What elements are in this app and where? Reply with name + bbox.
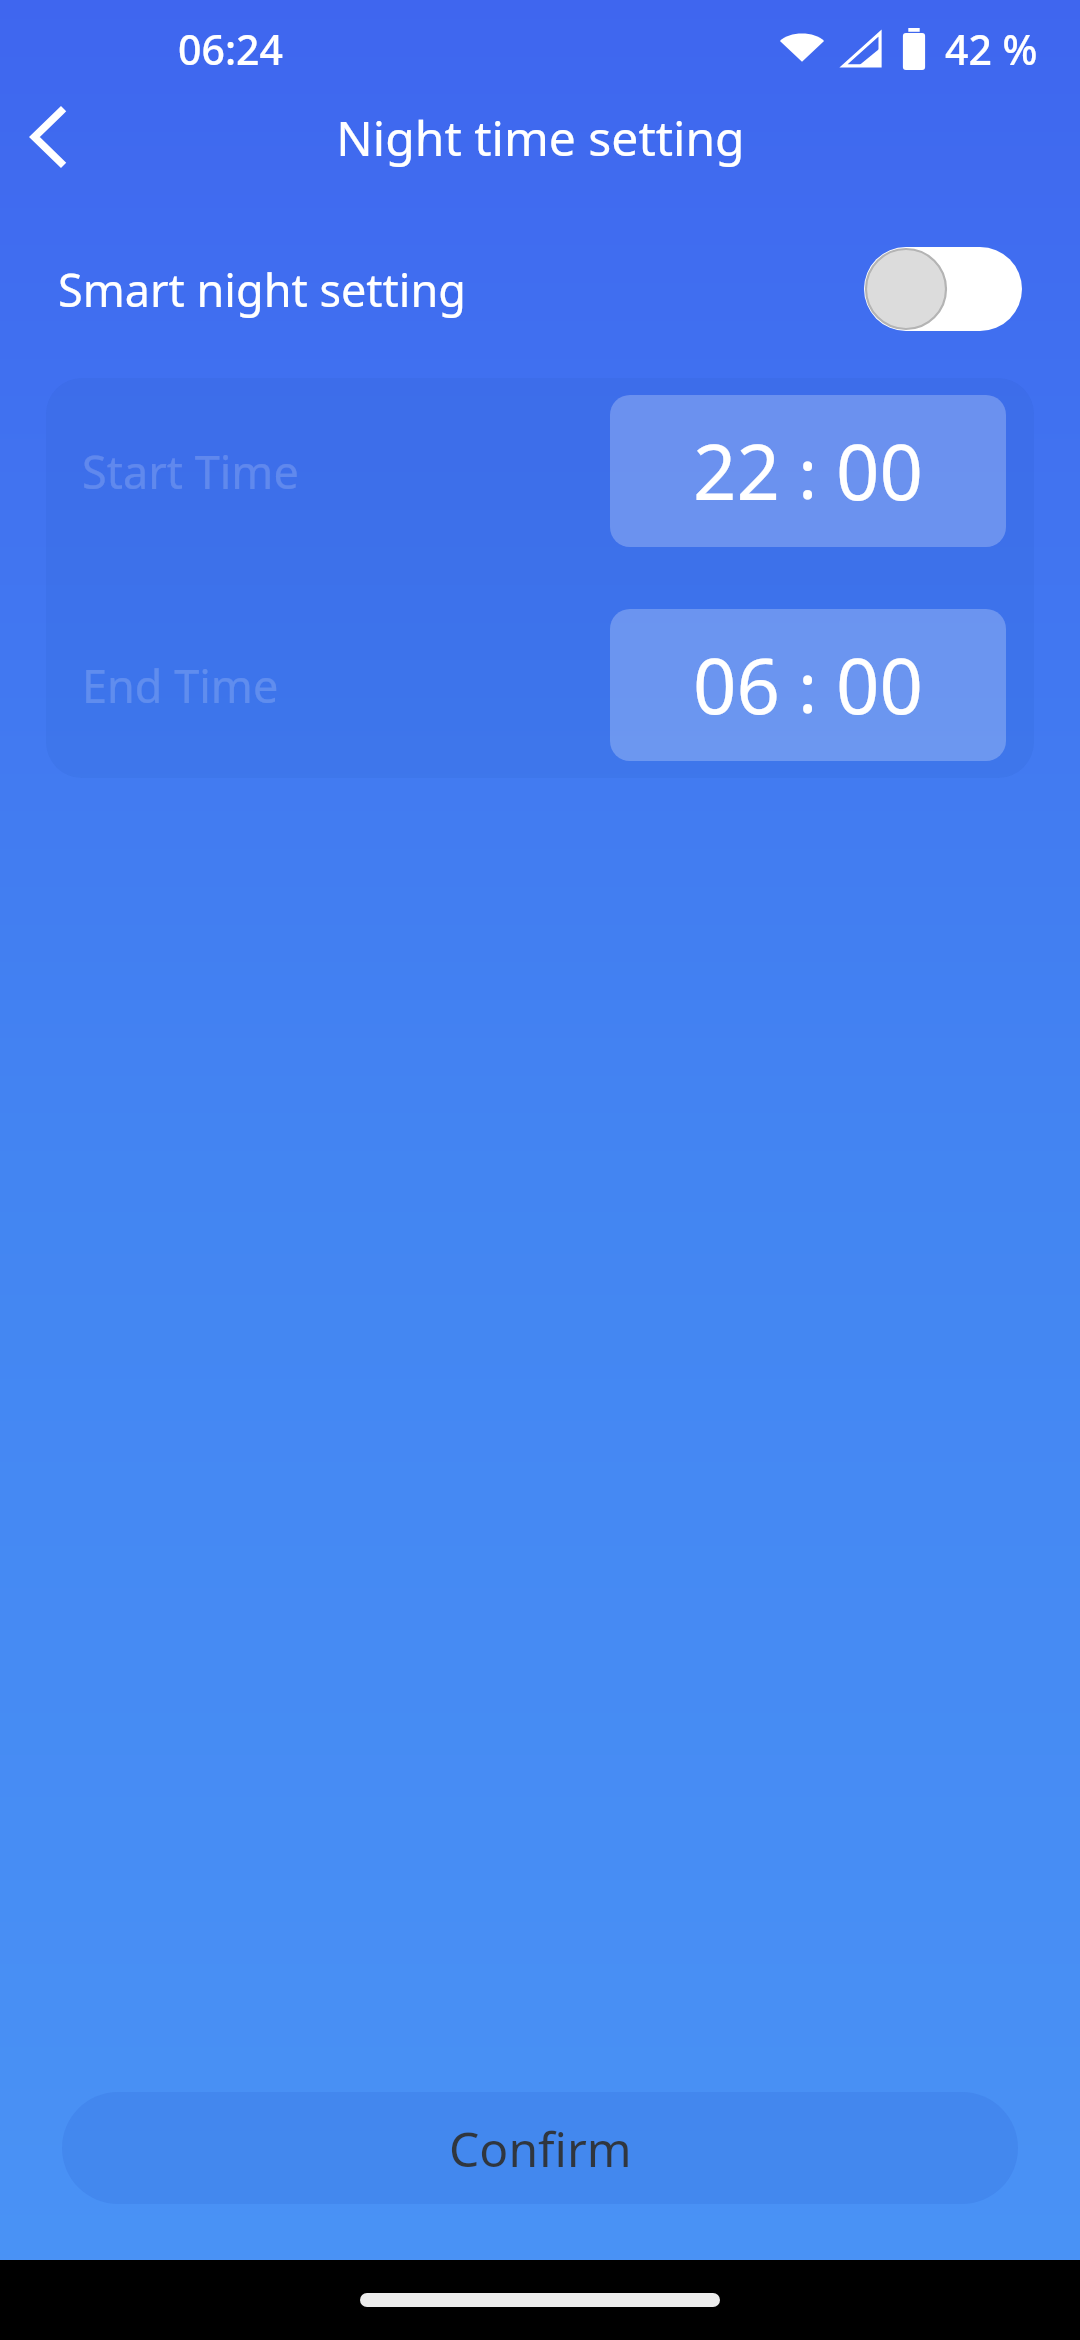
staticText: End Time bbox=[82, 655, 279, 716]
staticText: 00 bbox=[836, 419, 923, 523]
staticText: : bbox=[780, 638, 836, 733]
staticText: 06:24 bbox=[178, 21, 283, 77]
staticText: Smart night setting bbox=[58, 259, 466, 320]
staticText: 00 bbox=[836, 633, 923, 737]
staticText: Start Time bbox=[82, 441, 299, 502]
button[interactable]: Smart night setting bbox=[0, 234, 1080, 344]
button[interactable]: Start Time bbox=[46, 378, 1034, 564]
button[interactable]: Back bbox=[0, 94, 96, 180]
button[interactable]: End Time bbox=[46, 592, 1034, 778]
staticText: 42 % bbox=[945, 21, 1038, 77]
staticText: 22 bbox=[693, 419, 780, 523]
button[interactable]: Confirm bbox=[62, 2092, 1018, 2204]
staticText: : bbox=[780, 424, 836, 519]
staticText: 06 bbox=[693, 633, 780, 737]
button[interactable]: Smart night setting toggle bbox=[864, 247, 1022, 331]
staticText: Confirm bbox=[449, 2116, 632, 2181]
staticText: Night time setting bbox=[336, 105, 745, 170]
